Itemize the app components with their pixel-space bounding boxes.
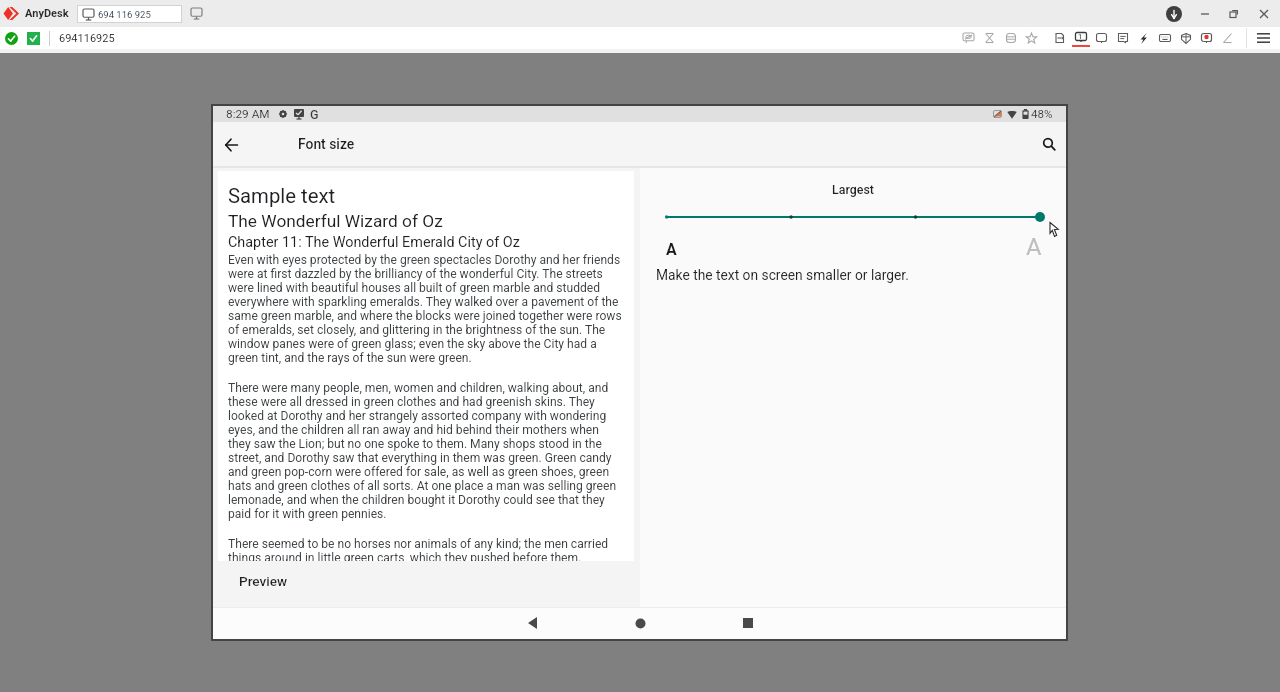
staticText: There were many people, men, women and c…	[228, 381, 624, 521]
staticText: A	[1026, 233, 1042, 261]
staticText: A	[666, 240, 677, 259]
button[interactable]: Session	[979, 27, 1000, 49]
staticText: G	[310, 107, 319, 122]
staticText: Largest	[640, 182, 1066, 197]
staticText: Preview	[239, 573, 288, 589]
button[interactable]: Maximize	[1226, 4, 1242, 24]
button[interactable]: Displays	[1070, 27, 1091, 49]
button[interactable]: Home	[586, 607, 694, 639]
button[interactable]: Back	[478, 607, 586, 639]
button[interactable]: Minimize	[1197, 4, 1213, 24]
staticText: Chapter 11: The Wonderful Emerald City o…	[228, 234, 520, 251]
staticText: Font size	[298, 136, 355, 152]
button[interactable]: Keyboard	[1154, 27, 1175, 49]
button[interactable]: Actions	[1133, 27, 1154, 49]
button[interactable]: Close	[1256, 4, 1272, 24]
button[interactable]: Menu	[1253, 27, 1273, 49]
staticText: 694 116 925	[98, 9, 151, 20]
staticText: AnyDesk	[25, 7, 69, 20]
button[interactable]: Screenshot	[958, 27, 979, 49]
button[interactable]: Permissions	[1175, 27, 1196, 49]
button[interactable]: Recents	[694, 607, 802, 639]
staticText: Make the text on screen smaller or large…	[656, 267, 909, 283]
button[interactable]: Storage	[1000, 27, 1021, 49]
staticText: There seemed to be no horses nor animals…	[228, 537, 624, 561]
button[interactable]: File transfer	[1049, 27, 1070, 49]
button[interactable]: Download	[1166, 6, 1182, 22]
button[interactable]: Favorite	[1021, 27, 1042, 49]
staticText: 1	[1078, 32, 1083, 41]
button[interactable]: Back	[213, 123, 250, 166]
button[interactable]: Chat	[1112, 27, 1133, 49]
button[interactable]: Monitor	[1091, 27, 1112, 49]
button[interactable]: Search	[1032, 123, 1066, 166]
button[interactable]: Record	[1196, 27, 1217, 49]
staticText: 8:29 AM	[226, 107, 270, 121]
staticText: 48%	[1031, 107, 1053, 121]
staticText: 694116925	[59, 32, 115, 45]
staticText: Sample text	[228, 184, 336, 208]
button[interactable]: Annotate	[1217, 27, 1238, 49]
staticText: Even with eyes protected by the green sp…	[228, 253, 624, 365]
staticText: The Wonderful Wizard of Oz	[228, 211, 443, 231]
